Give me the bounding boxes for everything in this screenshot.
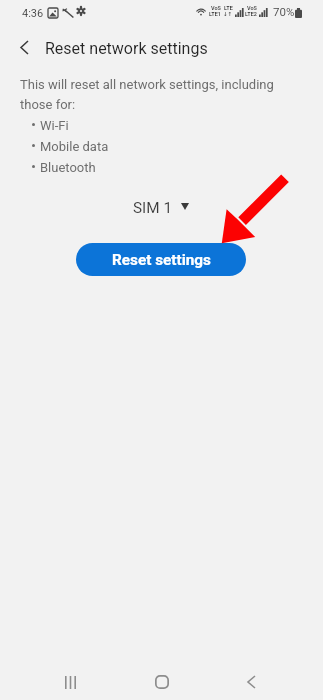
- button[interactable]: Home: [144, 664, 180, 700]
- button[interactable]: Reset settings: [76, 243, 246, 276]
- staticText: SIM 1: [133, 199, 172, 217]
- button[interactable]: Back: [8, 32, 40, 64]
- staticText: ↓↑: [223, 11, 233, 17]
- staticText: LTE1: [209, 11, 222, 17]
- staticText: This will reset all network settings, in…: [20, 77, 274, 112]
- staticText: VoS: [247, 5, 257, 11]
- staticText: 70%: [273, 5, 295, 18]
- staticText: Reset network settings: [45, 39, 208, 58]
- staticText: Mobile data: [40, 139, 109, 154]
- staticText: LTE2: [245, 11, 258, 17]
- staticText: LTE: [224, 5, 233, 11]
- staticText: Wi-Fi: [40, 118, 69, 133]
- staticText: VoS: [211, 5, 221, 11]
- staticText: 4:36: [22, 7, 44, 20]
- button[interactable]: Back: [233, 664, 269, 700]
- staticText: Bluetooth: [40, 160, 96, 175]
- button[interactable]: Recents: [52, 664, 88, 700]
- staticText: Reset settings: [112, 251, 211, 269]
- button[interactable]: SIM 1: [133, 199, 189, 217]
